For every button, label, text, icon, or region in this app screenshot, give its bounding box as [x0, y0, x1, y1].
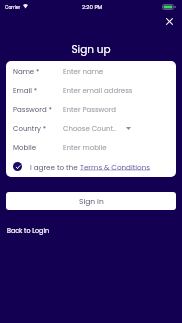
button[interactable]: Name * — [6, 62, 176, 81]
staticText: 2:20 PM — [82, 3, 103, 11]
staticText: Name * — [13, 67, 40, 77]
button[interactable]: Sign in — [6, 192, 176, 210]
button[interactable]: Close — [161, 13, 178, 30]
staticText: Sign in — [79, 196, 104, 206]
staticText: Carrier — [5, 4, 21, 10]
button[interactable]: I agree to the — [6, 157, 176, 176]
button[interactable]: Back to Login — [4, 222, 47, 238]
staticText: Back to Login — [7, 226, 50, 235]
staticText: Enter Password — [63, 105, 117, 115]
staticText: Enter name — [63, 67, 104, 77]
staticText: I agree to the — [30, 162, 80, 172]
staticText: Choose Count.. — [63, 124, 117, 134]
button[interactable]: Mobile — [6, 138, 176, 157]
button[interactable]: Email * — [6, 81, 176, 100]
button[interactable]: Country * — [6, 119, 176, 138]
button[interactable]: Password * — [6, 100, 176, 119]
staticText: Sign up — [0, 42, 182, 57]
staticText: Country * — [13, 124, 47, 134]
staticText: Mobile — [13, 143, 37, 153]
staticText: Password * — [13, 105, 52, 115]
staticText: Email * — [13, 86, 38, 96]
staticText: Enter mobile — [63, 143, 107, 153]
staticText: Enter email address — [63, 86, 133, 96]
button[interactable]: Terms & Conditions — [80, 162, 151, 172]
